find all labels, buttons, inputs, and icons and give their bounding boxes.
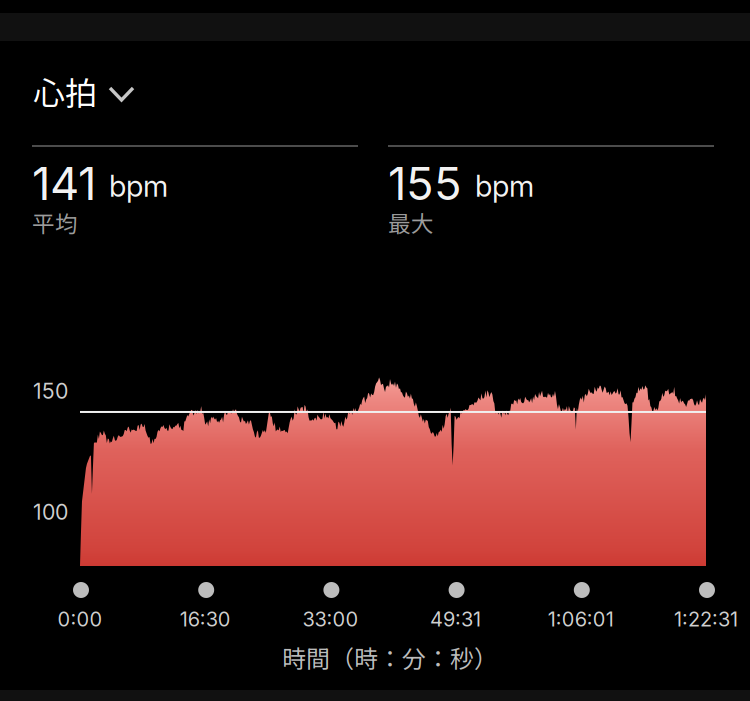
staticText: 49:31: [430, 607, 481, 631]
staticText: bpm: [109, 168, 168, 204]
staticText: 0:00: [57, 607, 102, 631]
staticText: bpm: [475, 168, 534, 204]
staticText: 141: [32, 156, 96, 211]
staticText: 平均: [32, 206, 78, 239]
staticText: 100: [33, 499, 68, 525]
staticText: 1:06:01: [548, 607, 614, 631]
staticText: 155: [388, 156, 462, 211]
button[interactable]: 心拍: [33, 68, 143, 108]
staticText: 33:00: [302, 607, 358, 631]
staticText: 16:30: [180, 607, 231, 631]
staticText: 150: [33, 378, 68, 404]
staticText: 時間（時：分：秒）: [282, 640, 498, 675]
staticText: 1:22:31: [674, 607, 738, 631]
staticText: 心拍: [33, 68, 97, 114]
staticText: 最大: [388, 206, 434, 239]
